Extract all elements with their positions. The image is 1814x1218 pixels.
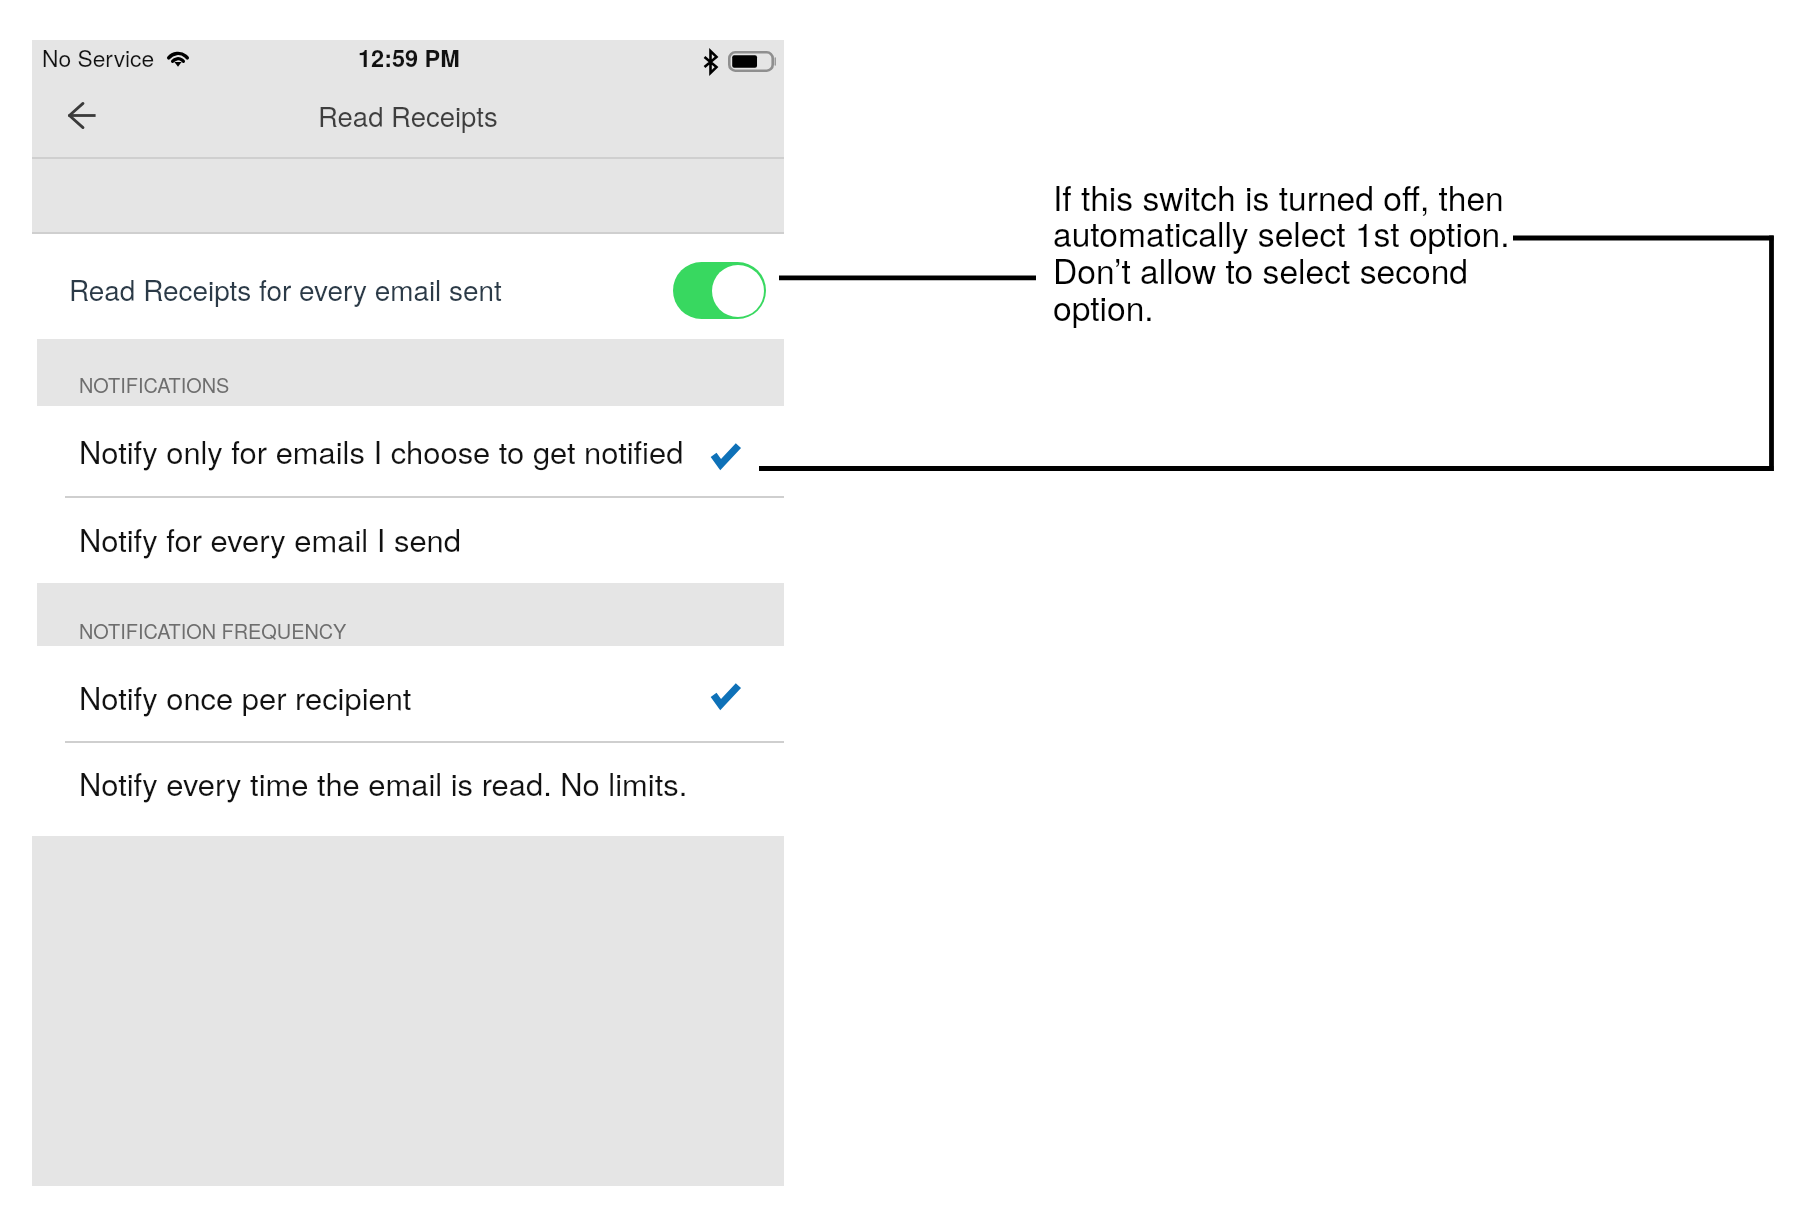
button[interactable]: Notify every time the email is read. No … xyxy=(32,743,784,836)
staticText: Notify only for emails I choose to get n… xyxy=(79,429,684,473)
staticText: NOTIFICATION FREQUENCY xyxy=(79,616,347,644)
staticText: Read Receipts xyxy=(318,95,498,134)
staticText: 12:59 PM xyxy=(358,41,460,73)
button[interactable]: Notify once per recipient xyxy=(32,646,784,741)
button[interactable]: Notify for every email I send xyxy=(32,497,784,583)
staticText: Notify every time the email is read. No … xyxy=(79,761,688,805)
button[interactable]: Notify only for emails I choose to get n… xyxy=(32,406,784,496)
staticText: Notify for every email I send xyxy=(79,517,461,561)
button[interactable]: Read receipts for every email sent toggl… xyxy=(673,262,766,319)
staticText: Notify once per recipient xyxy=(79,675,412,719)
staticText: Read Receipts for every email sent xyxy=(69,269,502,309)
staticText: No Service xyxy=(42,41,155,73)
staticText: If this switch is turned off, then autom… xyxy=(1053,172,1510,331)
staticText: NOTIFICATIONS xyxy=(79,370,230,398)
button[interactable]: Back xyxy=(50,87,114,143)
button[interactable]: Read Receipts for every email sent xyxy=(32,234,784,339)
